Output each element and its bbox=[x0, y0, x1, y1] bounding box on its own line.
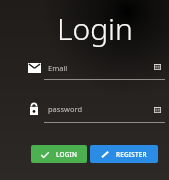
button[interactable] bbox=[26, 58, 164, 80]
staticText: password bbox=[48, 104, 82, 114]
staticText: LOGIN bbox=[56, 150, 78, 159]
staticText: Login bbox=[57, 8, 133, 49]
button[interactable]: LOGIN bbox=[31, 145, 87, 163]
button[interactable]: Show keyboard bbox=[154, 107, 161, 113]
button[interactable]: Show keyboard bbox=[154, 64, 161, 70]
staticText: Email bbox=[48, 63, 68, 73]
button[interactable] bbox=[26, 101, 164, 123]
staticText: REGISTER bbox=[116, 150, 147, 159]
button[interactable]: REGISTER bbox=[90, 145, 158, 163]
